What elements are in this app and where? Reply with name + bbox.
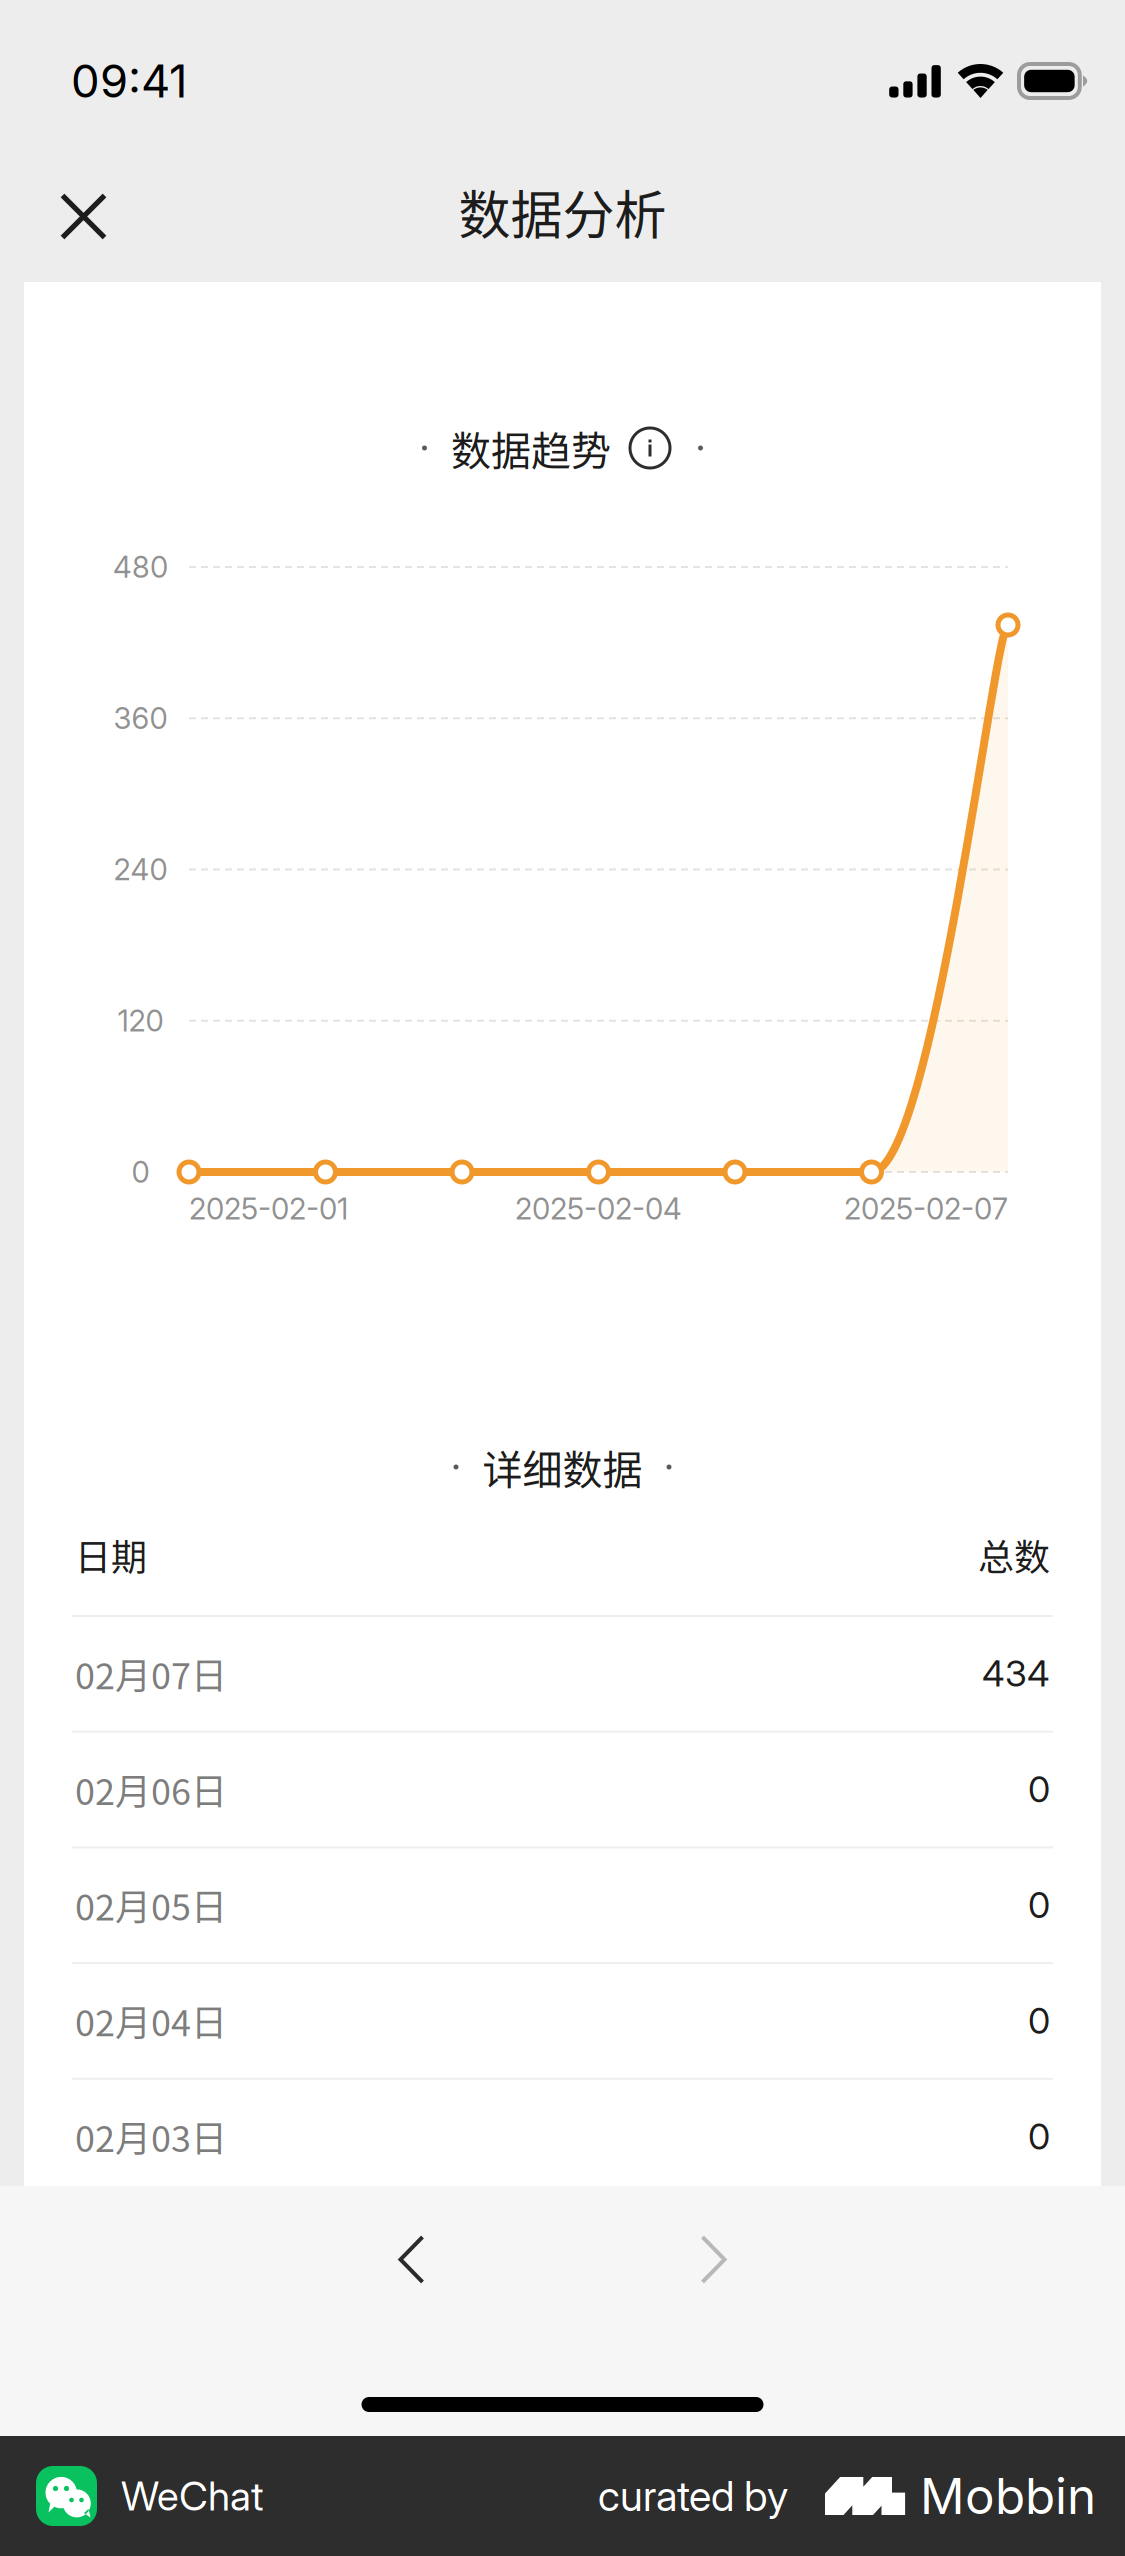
button[interactable]: About this chart: [629, 427, 698, 469]
staticText: 0: [1028, 2114, 1050, 2158]
staticText: 2025-02-07: [844, 1191, 1008, 1226]
button[interactable]: Close: [0, 141, 153, 282]
staticText: 0: [1028, 1883, 1050, 1927]
button[interactable]: 02月06日: [24, 1732, 1101, 1847]
staticText: 0: [1028, 1767, 1050, 1811]
button[interactable]: 02月04日: [24, 1963, 1101, 2078]
staticText: 0: [131, 1154, 149, 1190]
button[interactable]: 日期: [24, 1507, 1101, 1603]
staticText: 0: [1028, 1999, 1050, 2042]
button[interactable]: 02月07日: [24, 1616, 1101, 1731]
staticText: 02月06日: [75, 1763, 227, 1815]
staticText: 09:41: [71, 54, 187, 108]
button[interactable]: Previous page: [364, 2213, 458, 2306]
staticText: 数据分析: [458, 174, 666, 249]
staticText: Mobbin: [920, 2466, 1096, 2526]
staticText: 2025-02-04: [515, 1191, 682, 1226]
staticText: 2025-02-01: [189, 1191, 348, 1226]
staticText: 数据趋势: [451, 419, 611, 477]
staticText: 总数: [978, 1529, 1050, 1581]
staticText: 02月04日: [75, 1994, 227, 2047]
staticText: 详细数据: [482, 1438, 642, 1496]
staticText: 480: [113, 549, 168, 585]
staticText: 02月07日: [75, 1647, 227, 1699]
staticText: WeChat: [121, 2472, 264, 2520]
staticText: 434: [982, 1652, 1050, 1695]
staticText: curated by: [598, 2471, 788, 2521]
button[interactable]: 02月05日: [24, 1847, 1101, 1962]
staticText: 120: [117, 1003, 163, 1038]
button[interactable]: Next page: [666, 2213, 760, 2306]
staticText: 02月03日: [75, 2110, 227, 2162]
staticText: 360: [113, 700, 167, 736]
staticText: 02月05日: [75, 1879, 227, 1931]
staticText: 日期: [75, 1529, 147, 1581]
staticText: 240: [113, 852, 167, 887]
button[interactable]: 02月03日: [24, 2079, 1101, 2194]
